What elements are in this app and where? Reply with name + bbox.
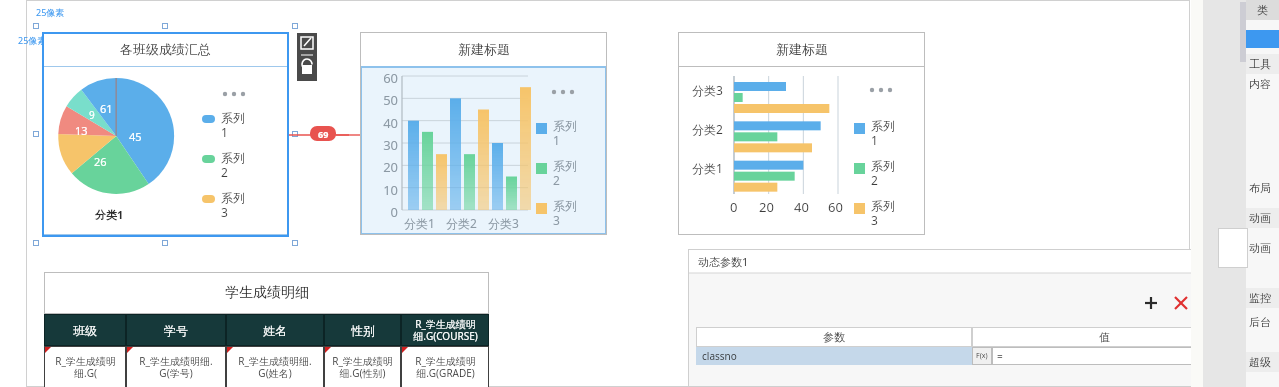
staticText: 0: [372, 203, 398, 221]
staticText: 系列 1: [871, 118, 895, 148]
staticText: 超级: [1249, 355, 1271, 369]
staticText: 30: [372, 136, 398, 154]
staticText: 班级: [73, 323, 97, 338]
staticText: 分类2: [692, 121, 723, 137]
staticText: 分类1: [404, 215, 435, 231]
button[interactable]: 更多: [868, 84, 892, 96]
staticText: 动画: [1249, 211, 1271, 225]
staticText: 系列 3: [221, 190, 245, 220]
staticText: 分类2: [446, 215, 477, 231]
button[interactable]: 动画: [1246, 208, 1279, 228]
button[interactable]: 新建标题: [360, 32, 607, 235]
staticText: 学号: [164, 323, 188, 338]
button[interactable]: classno: [696, 347, 972, 365]
staticText: 系列 3: [553, 198, 577, 228]
button[interactable]: 新建标题: [678, 32, 925, 235]
staticText: 60: [372, 69, 398, 87]
button[interactable]: 添加: [1143, 295, 1159, 311]
staticText: 45: [129, 129, 142, 144]
staticText: 60: [828, 198, 843, 216]
staticText: 0: [730, 198, 738, 216]
button[interactable]: 布局: [1246, 178, 1279, 198]
staticText: R_学生成绩明 细.G(GRADE): [415, 354, 476, 380]
staticText: 系列 1: [221, 110, 245, 140]
staticText: 新建标题: [458, 41, 510, 57]
staticText: 值: [1099, 330, 1110, 344]
staticText: 工具: [1249, 57, 1271, 71]
staticText: =: [997, 349, 1003, 363]
staticText: 分类1: [692, 160, 723, 176]
button[interactable]: 后台: [1246, 312, 1279, 332]
staticText: 10: [372, 181, 398, 199]
staticText: 动态参数1: [698, 254, 749, 269]
button[interactable]: 下移: [1233, 295, 1249, 311]
staticText: 学生成绩明细: [225, 284, 309, 302]
staticText: R_学生成绩明 细.G(: [55, 354, 116, 380]
staticText: 分类3: [692, 82, 723, 98]
staticText: 25像素: [36, 6, 65, 18]
staticText: 参数: [823, 330, 845, 344]
staticText: 各班级成绩汇总: [120, 41, 211, 57]
button[interactable]: 超级: [1246, 352, 1279, 372]
button[interactable]: 更多: [221, 88, 245, 100]
button[interactable]: 工具: [1246, 54, 1279, 74]
button[interactable]: 学生成绩明细: [44, 272, 489, 387]
staticText: 后台: [1249, 315, 1271, 329]
staticText: 40: [372, 114, 398, 132]
staticText: 系列 2: [553, 158, 577, 188]
staticText: 内容: [1249, 77, 1271, 91]
staticText: 系列 2: [221, 150, 245, 180]
staticText: R_学生成绩明细. G(学号): [139, 354, 213, 380]
staticText: 9: [89, 108, 95, 122]
staticText: 61: [100, 101, 113, 116]
staticText: 监控: [1249, 291, 1271, 305]
staticText: R_学生成绩明细. G(姓名): [238, 354, 312, 380]
staticText: 69: [318, 128, 329, 140]
staticText: 40: [794, 198, 809, 216]
staticText: F(x): [976, 351, 988, 361]
staticText: 26: [94, 154, 107, 169]
button[interactable]: 动画: [1246, 238, 1279, 258]
staticText: 13: [75, 123, 88, 138]
staticText: 系列 3: [871, 198, 895, 228]
staticText: R_学生成绩明 细.G(性别): [332, 354, 393, 380]
button[interactable]: 各班级成绩汇总: [42, 32, 289, 237]
staticText: 20: [372, 158, 398, 176]
button[interactable]: 公式: [972, 347, 992, 365]
staticText: 分类1: [95, 207, 124, 222]
staticText: 系列 1: [553, 118, 577, 148]
button[interactable]: 监控: [1246, 288, 1279, 308]
staticText: 分类3: [488, 215, 519, 231]
staticText: classno: [702, 349, 737, 363]
staticText: 50: [372, 91, 398, 109]
staticText: 类: [1257, 3, 1268, 17]
staticText: 姓名: [263, 323, 287, 338]
staticText: R_学生成绩明 细.G(COURSE): [413, 317, 478, 343]
staticText: 系列 2: [871, 158, 895, 188]
button[interactable]: 更多: [550, 86, 574, 98]
button[interactable]: 内容: [1246, 74, 1279, 94]
staticText: 布局: [1249, 181, 1271, 195]
staticText: 20: [759, 198, 774, 216]
staticText: 新建标题: [776, 41, 828, 57]
staticText: 性别: [351, 323, 375, 338]
staticText: 动画: [1249, 241, 1271, 255]
staticText: 25像素: [18, 34, 47, 46]
button[interactable]: 删除: [1173, 295, 1189, 311]
